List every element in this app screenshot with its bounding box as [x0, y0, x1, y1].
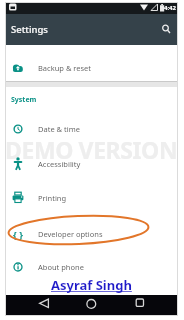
- staticText: DEMO VERSION: [5, 134, 178, 164]
- staticText: Date & time: [38, 124, 80, 134]
- staticText: Backup & reset: [38, 63, 92, 73]
- button[interactable]: [81, 295, 101, 316]
- staticText: Asyraf Singh: [51, 276, 132, 294]
- button[interactable]: { }: [5, 216, 178, 252]
- staticText: About phone: [38, 262, 84, 272]
- button[interactable]: Backup & reset: [5, 50, 178, 86]
- button[interactable]: Printing: [5, 180, 178, 216]
- button[interactable]: Accessibility: [5, 146, 178, 182]
- staticText: Printing: [38, 193, 67, 203]
- staticText: Developer options: [38, 229, 103, 239]
- staticText: Settings: [11, 23, 48, 36]
- staticText: { }: [13, 228, 23, 241]
- staticText: System: [11, 95, 37, 105]
- button[interactable]: About phone: [5, 249, 178, 285]
- button[interactable]: [35, 295, 55, 316]
- button[interactable]: [130, 295, 150, 316]
- staticText: Accessibility: [38, 159, 81, 169]
- button[interactable]: Date & time: [5, 111, 178, 147]
- staticText: 4:42: [164, 4, 176, 12]
- button[interactable]: [160, 23, 174, 37]
